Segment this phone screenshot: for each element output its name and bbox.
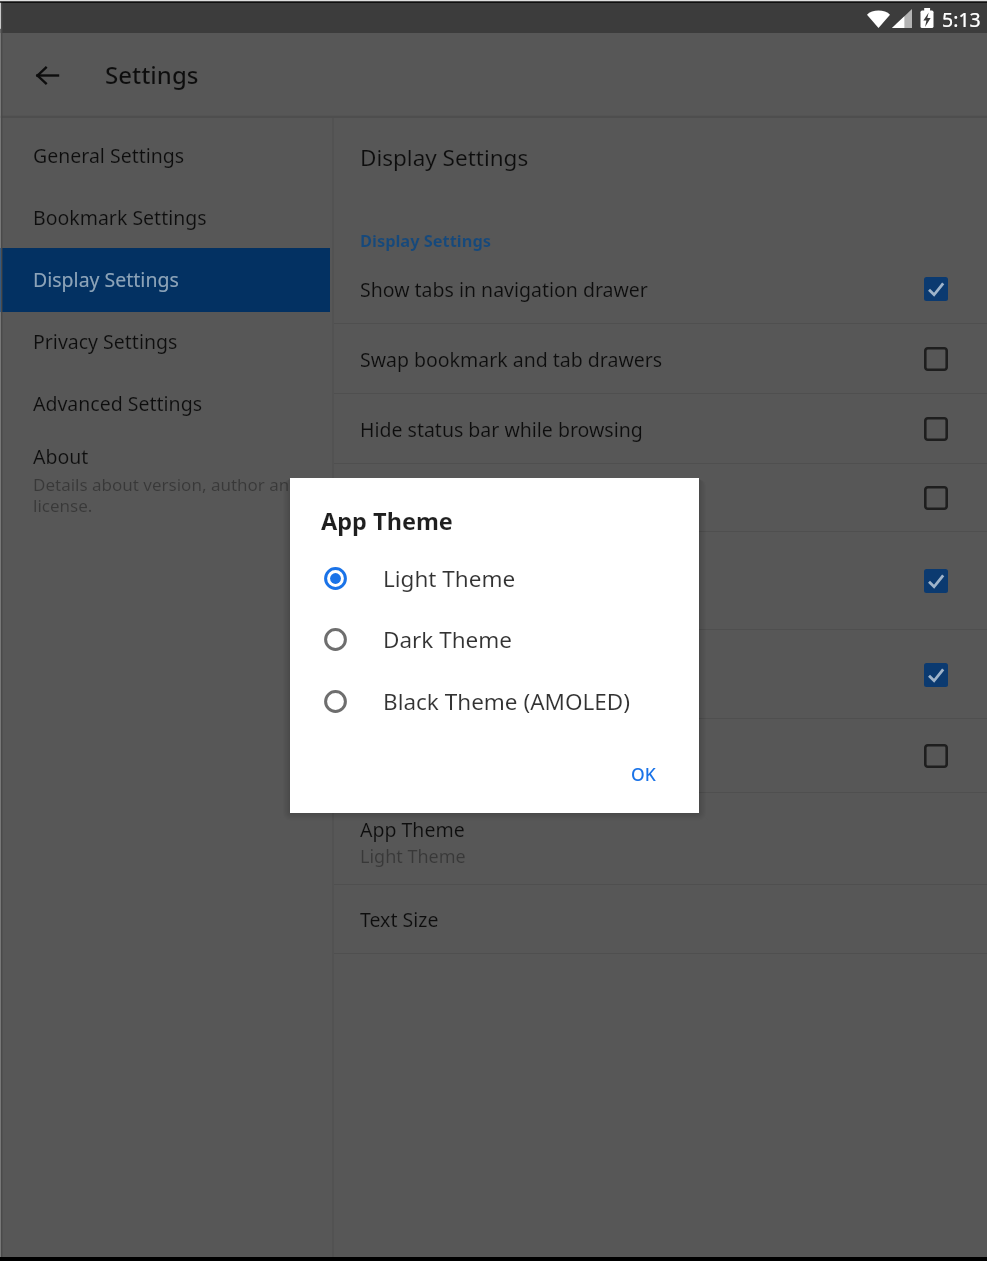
staticText: Settings bbox=[105, 58, 199, 91]
button[interactable]: Privacy Settings bbox=[0, 317, 330, 365]
staticText: General Settings bbox=[33, 142, 185, 169]
button[interactable]: Light Theme bbox=[290, 548, 699, 609]
staticText: Details about version, author and licens… bbox=[33, 473, 331, 517]
staticText: App Theme bbox=[360, 816, 465, 843]
staticText: Enable JavaScript bbox=[360, 558, 517, 585]
staticText: Advanced Settings bbox=[33, 390, 202, 417]
staticText: OK bbox=[631, 762, 656, 786]
staticText: Light Theme bbox=[360, 844, 466, 869]
button[interactable]: Hide status bar while browsing bbox=[334, 394, 987, 464]
staticText: Hide status bar while browsing bbox=[360, 416, 643, 443]
button[interactable]: Text Size bbox=[334, 885, 987, 954]
staticText: Swap bookmark and tab drawers bbox=[360, 346, 663, 373]
button[interactable]: Black Theme (AMOLED) bbox=[290, 671, 699, 732]
button[interactable]: Bookmark Settings bbox=[0, 193, 330, 241]
staticText: Privacy Settings bbox=[33, 328, 178, 355]
staticText: Show tabs in navigation drawer bbox=[360, 276, 648, 303]
staticText: About bbox=[33, 443, 89, 470]
button[interactable]: Dark Theme bbox=[290, 609, 699, 670]
staticText: Bookmark Settings bbox=[33, 204, 207, 231]
staticText: Display Settings bbox=[33, 266, 179, 293]
button[interactable]: Swap bookmark and tab drawers bbox=[334, 324, 987, 394]
button[interactable]: Enable cookies bbox=[334, 630, 987, 719]
button[interactable]: General Settings bbox=[0, 131, 330, 179]
button[interactable]: Display images bbox=[334, 464, 987, 532]
staticText: 5:13 bbox=[942, 6, 981, 33]
button[interactable]: Display Settings bbox=[0, 255, 330, 303]
button[interactable]: Do Not Track bbox=[334, 719, 987, 793]
button[interactable]: About bbox=[0, 439, 334, 525]
staticText: Light Theme bbox=[383, 563, 516, 594]
staticText: App Theme bbox=[321, 505, 453, 537]
button[interactable]: Enable JavaScript bbox=[334, 532, 987, 630]
staticText: Dark Theme bbox=[383, 624, 513, 655]
staticText: Allow pages to run scripts bbox=[360, 586, 578, 611]
staticText: Display Settings bbox=[360, 142, 529, 173]
staticText: Text Size bbox=[360, 906, 439, 933]
button[interactable]: Show tabs in navigation drawer bbox=[334, 254, 987, 324]
button[interactable]: App Theme bbox=[334, 793, 987, 885]
staticText: Display Settings bbox=[360, 229, 491, 251]
button[interactable]: OK bbox=[617, 753, 670, 795]
button[interactable]: Advanced Settings bbox=[0, 379, 330, 427]
staticText: Black Theme (AMOLED) bbox=[383, 686, 630, 717]
button[interactable]: Back bbox=[27, 55, 67, 95]
staticText: Allow sites to store cookies bbox=[360, 679, 587, 704]
